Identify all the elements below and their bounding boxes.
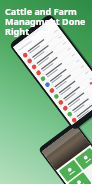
other: App screenshot preview	[0, 0, 92, 184]
button[interactable]: Cattle and Farm Managment Done Right	[5, 5, 86, 38]
